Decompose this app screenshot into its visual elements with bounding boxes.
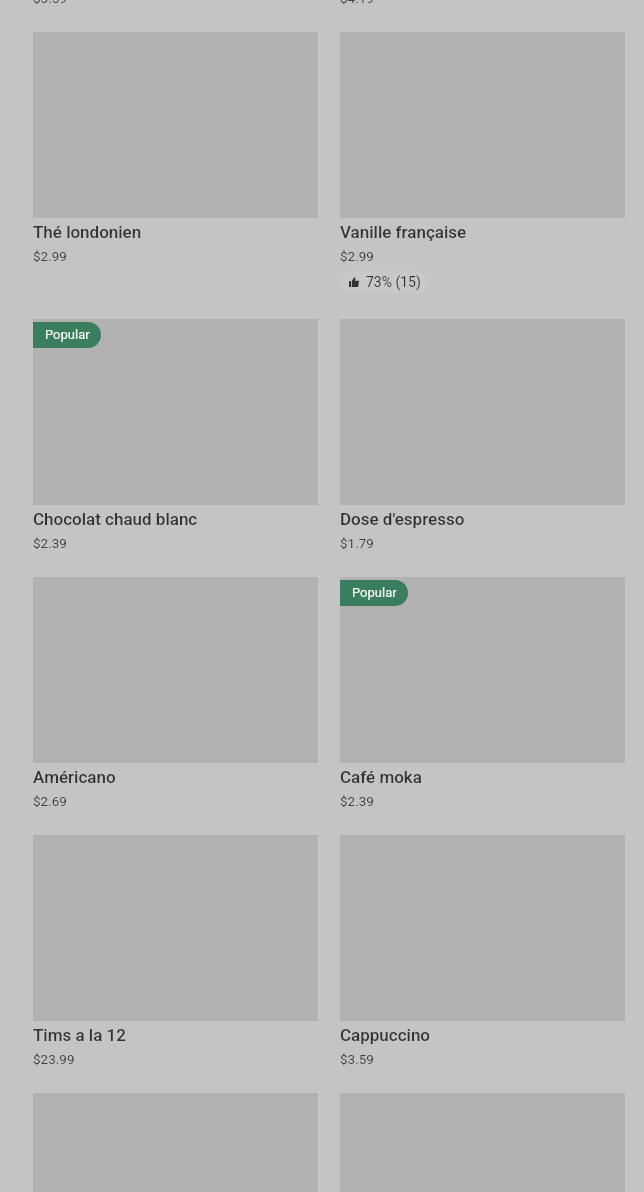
button[interactable]: Thé londonien xyxy=(33,32,318,264)
button[interactable]: Latte xyxy=(33,0,318,6)
staticText: $3.59 xyxy=(340,1051,374,1067)
button[interactable]: Américano xyxy=(33,577,318,809)
staticText: Américano xyxy=(33,767,116,787)
button[interactable]: Popular xyxy=(33,322,101,348)
button[interactable]: Popular xyxy=(33,319,318,551)
staticText: Thé londonien xyxy=(33,222,142,242)
button[interactable]: Café au lait xyxy=(340,0,625,6)
staticText: $2.39 xyxy=(340,793,374,809)
button[interactable]: Thumbs up xyxy=(340,271,428,293)
staticText: $3.59 xyxy=(33,0,67,6)
button[interactable]: Popular xyxy=(340,577,625,809)
staticText: Vanille française xyxy=(340,222,467,242)
staticText: Tims a la 12 xyxy=(33,1025,126,1045)
button[interactable]: Tims a la 12 xyxy=(33,835,318,1067)
staticText: $4.19 xyxy=(340,0,374,6)
staticText: Popular xyxy=(352,585,397,600)
staticText: Chocolat chaud blanc xyxy=(33,509,198,529)
staticText: $2.99 xyxy=(33,248,67,264)
staticText: $1.79 xyxy=(340,535,374,551)
button[interactable]: Popular xyxy=(340,580,408,606)
button[interactable]: Cappuccino xyxy=(340,835,625,1067)
staticText: $2.69 xyxy=(33,793,67,809)
other: Thumbs up xyxy=(349,277,359,287)
staticText: $2.99 xyxy=(340,248,374,264)
staticText: Dose d'espresso xyxy=(340,509,465,529)
button[interactable]: Dose d'espresso xyxy=(340,319,625,551)
staticText: $2.39 xyxy=(33,535,67,551)
button[interactable]: Vanille française xyxy=(340,32,625,293)
staticText: Popular xyxy=(45,327,90,342)
staticText: $23.99 xyxy=(33,1051,75,1067)
staticText: Cappuccino xyxy=(340,1025,431,1045)
staticText: 73% (15) xyxy=(366,274,421,290)
staticText: Café moka xyxy=(340,767,422,787)
